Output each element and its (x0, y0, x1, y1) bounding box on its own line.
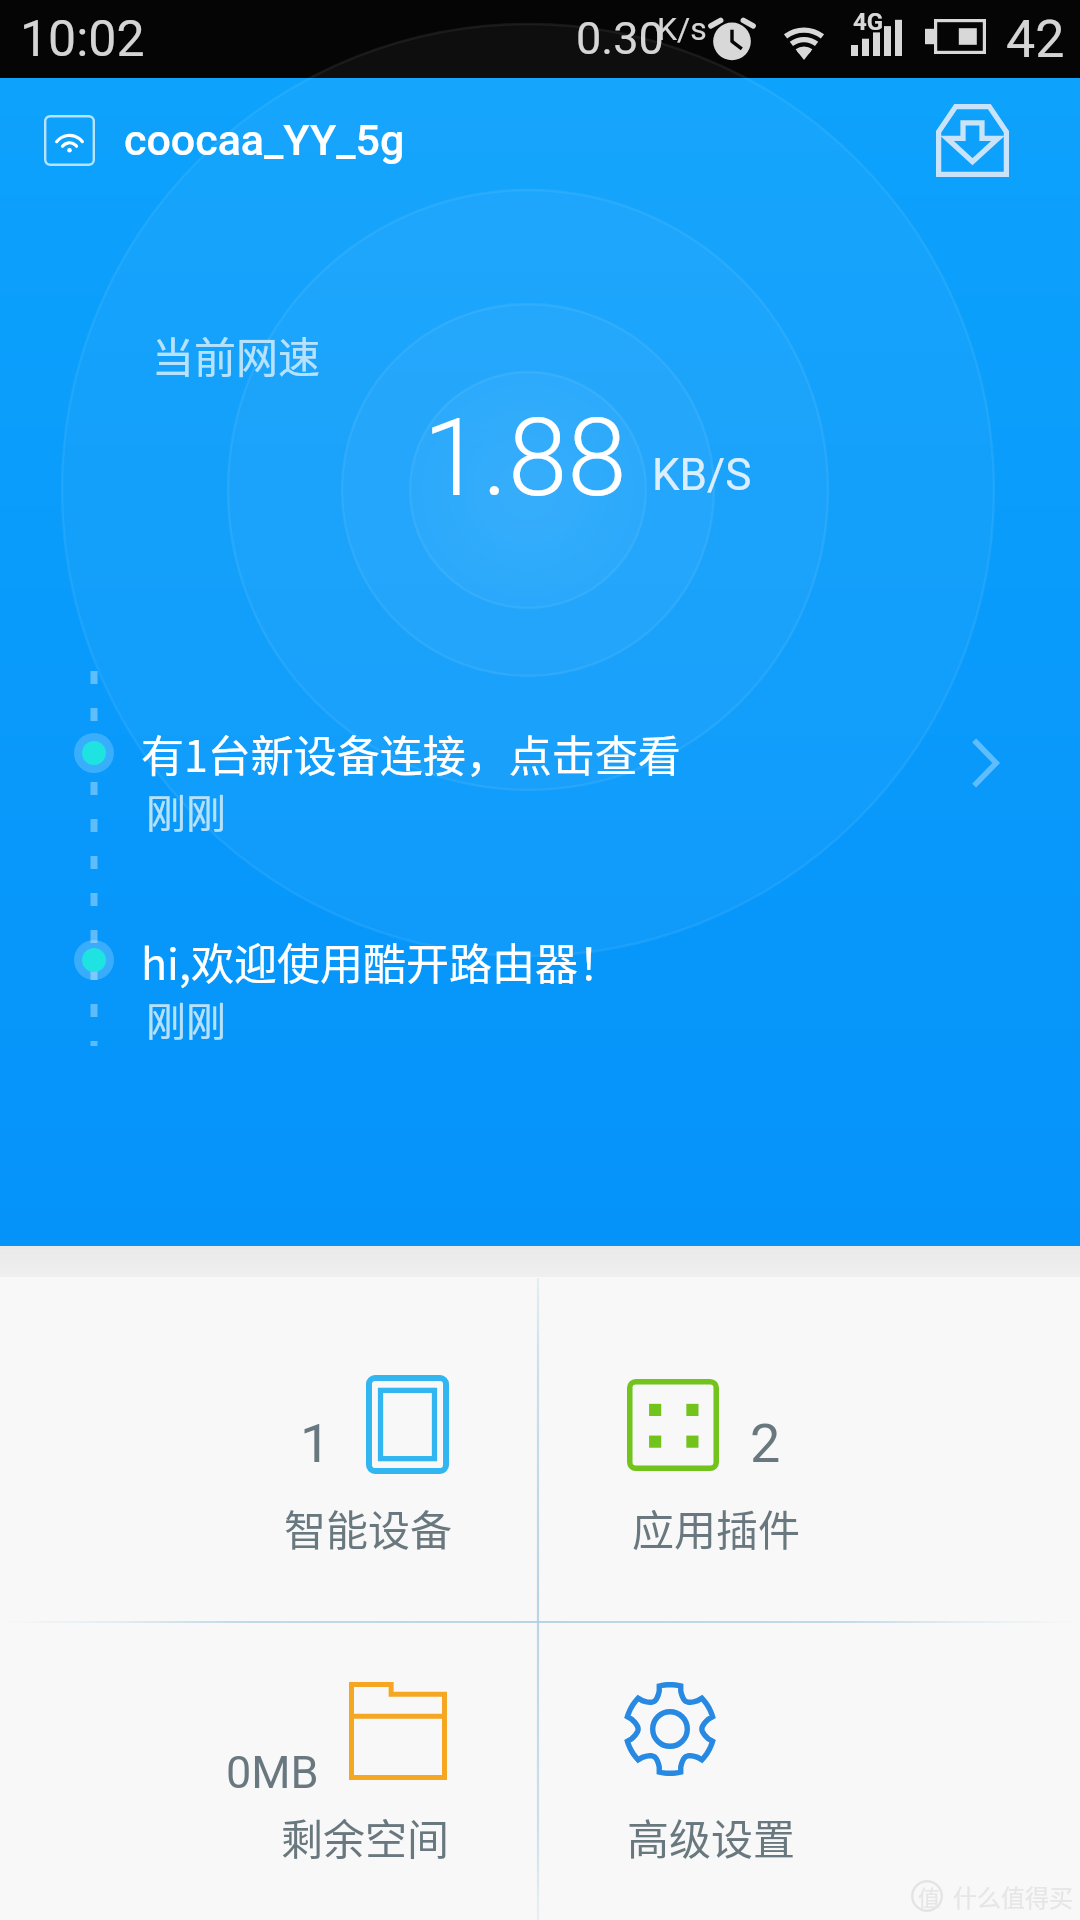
staticText: 0MB (226, 1746, 319, 1799)
button[interactable]: hi,欢迎使用酷开路由器！ (0, 914, 1080, 1054)
staticText: 2 (750, 1412, 781, 1475)
staticText: 42 (1006, 9, 1065, 70)
staticText: 刚刚 (146, 782, 226, 840)
staticText: 刚刚 (146, 990, 226, 1048)
staticText: 1 (300, 1412, 331, 1475)
staticText: hi,欢迎使用酷开路由器！ (141, 930, 621, 992)
staticText: 什么值得买 (953, 1879, 1073, 1914)
button[interactable]: Download firmware (917, 85, 1027, 195)
staticText: 高级设置 (627, 1806, 796, 1867)
button[interactable]: 2 (540, 1277, 1080, 1622)
button[interactable]: 有1台新设备连接，点击查看 (0, 706, 1080, 846)
button[interactable]: 1 (0, 1277, 540, 1622)
staticText: 有1台新设备连接，点击查看 (141, 722, 681, 784)
staticText: 1.88 (423, 396, 627, 521)
staticText: 当前网速 (152, 324, 321, 385)
staticText: 智能设备 (284, 1497, 453, 1558)
button[interactable]: View connected devices (940, 718, 1030, 808)
staticText: coocaa_YY_5g (124, 115, 405, 165)
button[interactable]: 高级设置 (540, 1624, 1080, 1920)
staticText: 值 (918, 1880, 941, 1912)
staticText: 4G (853, 8, 884, 36)
staticText: K/s (657, 10, 707, 48)
staticText: 10:02 (20, 10, 145, 69)
staticText: 0.30 (576, 12, 664, 65)
staticText: 应用插件 (632, 1497, 801, 1558)
staticText: 剩余空间 (281, 1806, 450, 1867)
staticText: KB/S (652, 449, 752, 501)
button[interactable]: 0MB (0, 1624, 540, 1920)
button[interactable]: coocaa_YY_5g (44, 115, 405, 166)
